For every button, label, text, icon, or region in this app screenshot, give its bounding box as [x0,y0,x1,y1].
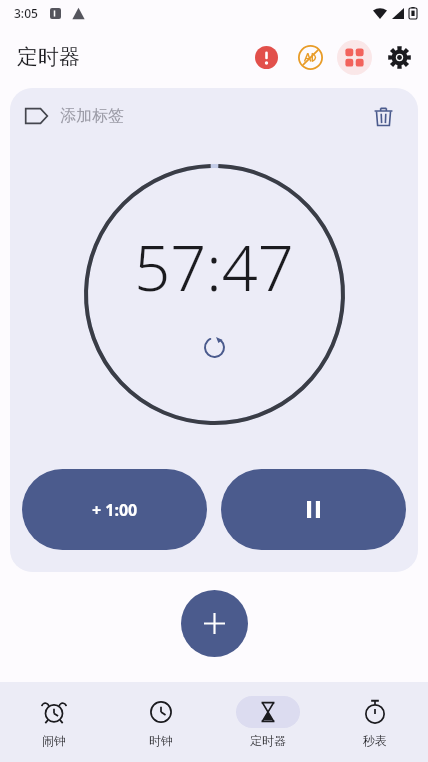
staticText: 57:47 [134,224,294,310]
button[interactable]: 添加标签 [24,88,362,144]
button[interactable]: Delete timer [362,95,404,137]
button[interactable]: 时钟 [107,682,214,762]
staticText: 闹钟 [42,733,66,748]
button[interactable]: Warning [244,35,288,79]
button[interactable]: Remove ads [288,35,332,79]
button[interactable]: 闹钟 [0,682,107,762]
staticText: 添加标签 [60,106,124,126]
staticText: 定时器 [17,44,80,70]
button[interactable]: Settings [376,34,422,80]
button[interactable]: Add timer [181,590,248,657]
button[interactable]: 定时器 [214,682,321,762]
button[interactable]: 秒表 [321,682,428,762]
staticText: 定时器 [250,733,286,748]
button[interactable]: + 1:00 [22,469,207,550]
staticText: 秒表 [363,733,387,748]
button[interactable]: Pause [221,469,406,550]
button[interactable]: Reset [197,330,231,364]
button[interactable]: More apps [332,35,376,79]
staticText: 3:05 [14,5,38,21]
staticText: + 1:00 [92,499,138,521]
staticText: 时钟 [149,733,173,748]
